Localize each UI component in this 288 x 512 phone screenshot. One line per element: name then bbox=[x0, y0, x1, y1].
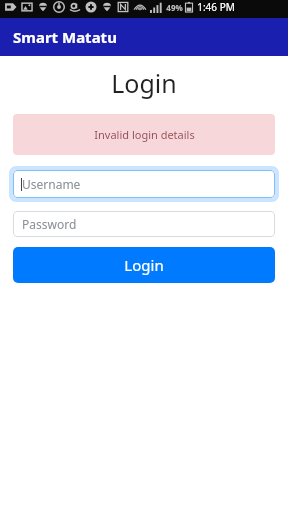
staticText: Password bbox=[22, 216, 77, 232]
button[interactable]: Username bbox=[13, 170, 275, 198]
button[interactable]: Password bbox=[13, 211, 275, 237]
button[interactable]: Login bbox=[13, 247, 275, 283]
staticText: 49% bbox=[166, 2, 183, 13]
staticText: Login bbox=[111, 66, 177, 100]
staticText: Login bbox=[124, 255, 164, 275]
button[interactable]: Invalid login details bbox=[13, 114, 275, 155]
staticText: Smart Matatu bbox=[13, 27, 117, 47]
staticText: 1:46 PM bbox=[197, 0, 235, 14]
staticText: Username bbox=[22, 176, 81, 192]
staticText: Invalid login details bbox=[94, 127, 195, 142]
